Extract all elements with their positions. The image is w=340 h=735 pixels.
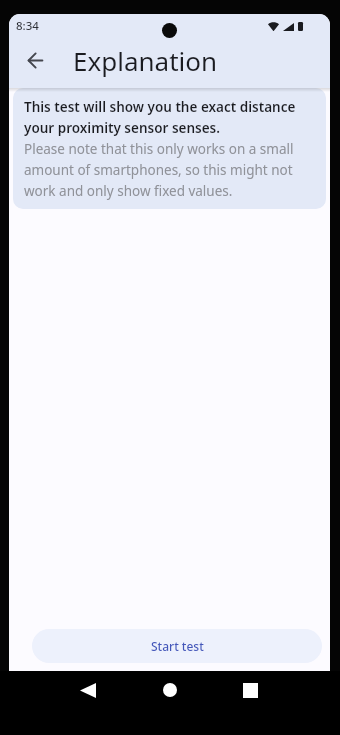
staticText: This test will show you the exact distan…	[24, 98, 315, 200]
staticText: 8:34	[16, 18, 39, 34]
staticText: Explanation	[73, 43, 218, 78]
button[interactable]: Recent apps	[226, 671, 274, 709]
staticText: Start test	[151, 638, 204, 654]
button[interactable]: Back	[18, 43, 52, 77]
button[interactable]: Home	[146, 671, 194, 709]
button[interactable]: Start test	[32, 629, 322, 663]
button[interactable]: Back	[64, 671, 112, 709]
